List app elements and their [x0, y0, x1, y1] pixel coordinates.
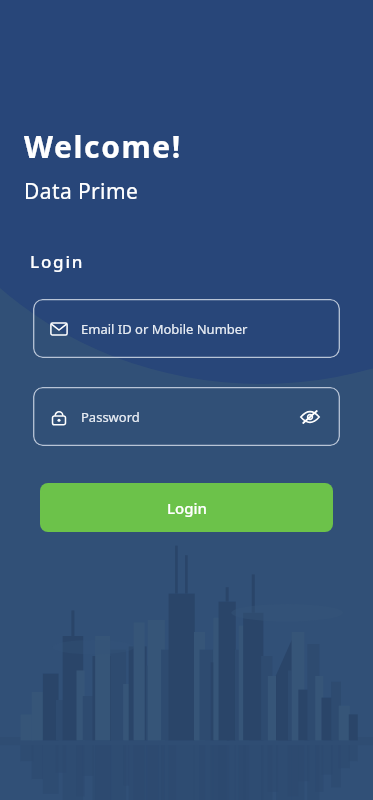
- staticText: Password: [81, 408, 140, 426]
- button[interactable]: Show password: [290, 397, 330, 437]
- button[interactable]: Email ID or Mobile Number: [33, 299, 340, 358]
- staticText: Login: [167, 498, 207, 518]
- staticText: Login: [30, 250, 85, 273]
- staticText: Email ID or Mobile Number: [81, 320, 248, 338]
- button[interactable]: Login: [40, 483, 333, 532]
- staticText: Welcome!: [24, 126, 182, 167]
- staticText: Data Prime: [24, 177, 139, 206]
- button[interactable]: Password: [33, 387, 340, 446]
